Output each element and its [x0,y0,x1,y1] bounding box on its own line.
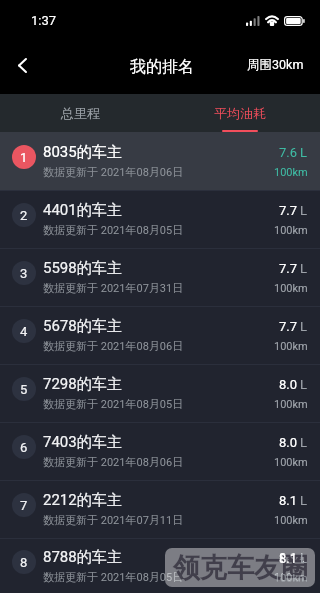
staticText: 100km [274,572,308,585]
staticText: 100km [274,456,308,469]
staticText: 7 [20,498,28,513]
staticText: 100km [274,224,308,237]
staticText: 100km [274,398,308,411]
staticText: 8 [20,555,28,570]
staticText: 7.7 [279,203,298,218]
staticText: 4401的车主 [43,201,122,220]
staticText: 数据更新于 2021年08月06日 [43,455,184,469]
staticText: 平均油耗 [214,105,266,121]
button[interactable]: 4 [0,306,320,364]
staticText: 数据更新于 2021年08月06日 [43,339,184,353]
button[interactable]: 3 [0,248,320,306]
staticText: 我的排名 [130,57,194,77]
staticText: 2 [20,208,28,223]
staticText: 7.7 [279,261,298,276]
staticText: 1:37 [31,13,57,28]
staticText: 5598的车主 [43,259,122,278]
staticText: 8035的车主 [43,143,122,162]
staticText: 7298的车主 [43,375,122,394]
staticText: 数据更新于 2021年08月05日 [43,570,184,584]
staticText: 7.6 [279,145,298,160]
staticText: L [300,203,308,218]
staticText: 2212的车主 [43,491,122,510]
staticText: 数据更新于 2021年07月31日 [43,281,184,295]
button[interactable]: Back [0,43,44,87]
staticText: 8.1 [279,551,298,566]
button[interactable]: 8 [0,538,320,593]
staticText: 数据更新于 2021年07月11日 [43,513,184,527]
button[interactable]: 总里程 [0,94,160,132]
staticText: L [300,377,308,392]
staticText: 5 [20,382,28,397]
staticText: L [300,319,308,334]
staticText: 6 [20,440,28,455]
staticText: 8788的车主 [43,548,122,567]
staticText: 100km [274,166,308,179]
button[interactable]: 7 [0,480,320,538]
staticText: 100km [274,340,308,353]
staticText: 数据更新于 2021年08月05日 [43,397,184,411]
staticText: 8.1 [279,493,298,508]
button[interactable]: 1 [0,132,320,190]
staticText: 数据更新于 2021年08月06日 [43,165,184,179]
staticText: 100km [274,282,308,295]
staticText: 8.1 [279,550,298,565]
button[interactable]: 5 [0,364,320,422]
staticText: L [300,261,308,276]
staticText: L [300,493,308,508]
staticText: 100km [274,514,308,527]
staticText: L [300,550,308,565]
button[interactable]: 2 [0,190,320,248]
staticText: 数据更新于 2021年08月05日 [43,223,184,237]
button[interactable]: 6 [0,422,320,480]
staticText: 7.7 [279,319,298,334]
staticText: 领克车友圈 [173,551,308,585]
staticText: 7403的车主 [43,433,122,452]
staticText: 100km [274,571,308,584]
staticText: 4 [20,324,28,339]
staticText: L [300,145,308,160]
staticText: L [300,551,308,566]
staticText: 5678的车主 [43,317,122,336]
button[interactable]: 周围30km [231,47,320,83]
staticText: 总里程 [61,105,100,121]
staticText: 3 [20,266,28,281]
staticText: 8.0 [279,377,298,392]
button[interactable]: 平均油耗 [160,94,320,132]
staticText: 周围30km [247,57,304,73]
staticText: 1 [20,150,28,165]
staticText: 8.0 [279,435,298,450]
staticText: L [300,435,308,450]
